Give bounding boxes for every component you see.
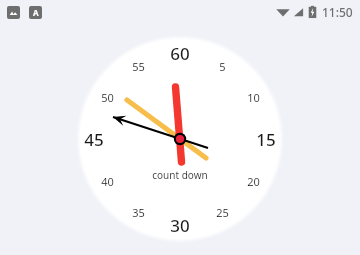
other: Cellular signal: [293, 6, 304, 18]
other: Battery charging: [308, 5, 317, 19]
staticText: 40: [101, 174, 114, 189]
staticText: 60: [170, 42, 190, 65]
staticText: 15: [256, 128, 276, 151]
staticText: 11:50: [322, 4, 353, 20]
other: App notification: [29, 6, 42, 19]
other: Screenshot notification: [7, 6, 20, 19]
staticText: 25: [216, 205, 229, 220]
staticText: 30: [170, 214, 190, 237]
staticText: 20: [247, 174, 260, 189]
staticText: 5: [219, 59, 226, 74]
staticText: 50: [101, 90, 114, 105]
staticText: A: [33, 7, 39, 18]
staticText: 10: [247, 90, 260, 105]
button[interactable]: 60: [0, 0, 360, 255]
staticText: count down: [152, 168, 208, 182]
staticText: 55: [132, 59, 145, 74]
other: Wi-Fi: [276, 6, 290, 18]
staticText: 35: [132, 205, 145, 220]
staticText: 45: [84, 128, 104, 151]
